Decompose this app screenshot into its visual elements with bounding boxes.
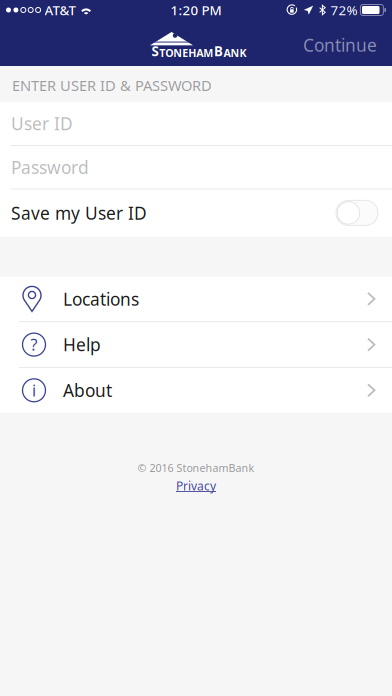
staticText: User ID xyxy=(11,112,73,135)
staticText: TONEHAM xyxy=(159,46,213,60)
button[interactable]: i xyxy=(0,368,392,413)
button[interactable]: Password xyxy=(0,146,392,189)
staticText: Help xyxy=(63,333,101,356)
staticText: About xyxy=(63,379,112,402)
staticText: 72% xyxy=(330,1,357,19)
staticText: ENTER USER ID & PASSWORD xyxy=(12,75,212,95)
button[interactable]: ? xyxy=(0,322,392,367)
button[interactable]: User ID xyxy=(0,102,392,145)
button[interactable]: Privacy xyxy=(176,478,216,494)
button[interactable]: Continue xyxy=(288,19,392,66)
button[interactable]: Save my User ID xyxy=(0,189,392,236)
staticText: Save my User ID xyxy=(11,201,147,224)
staticText: Continue xyxy=(303,33,377,56)
staticText: © 2016 StonehamBank xyxy=(137,461,254,475)
staticText: Password xyxy=(11,156,89,179)
staticText: ? xyxy=(30,334,37,355)
staticText: Locations xyxy=(63,287,139,310)
staticText: ANK xyxy=(224,46,247,60)
staticText: 1:20 PM xyxy=(170,1,221,19)
staticText: S xyxy=(151,42,158,60)
staticText: B xyxy=(214,42,223,60)
staticText: i xyxy=(32,380,36,401)
button[interactable]: Locations xyxy=(0,276,392,321)
staticText: Privacy xyxy=(176,478,216,494)
staticText: AT&T xyxy=(45,1,76,19)
